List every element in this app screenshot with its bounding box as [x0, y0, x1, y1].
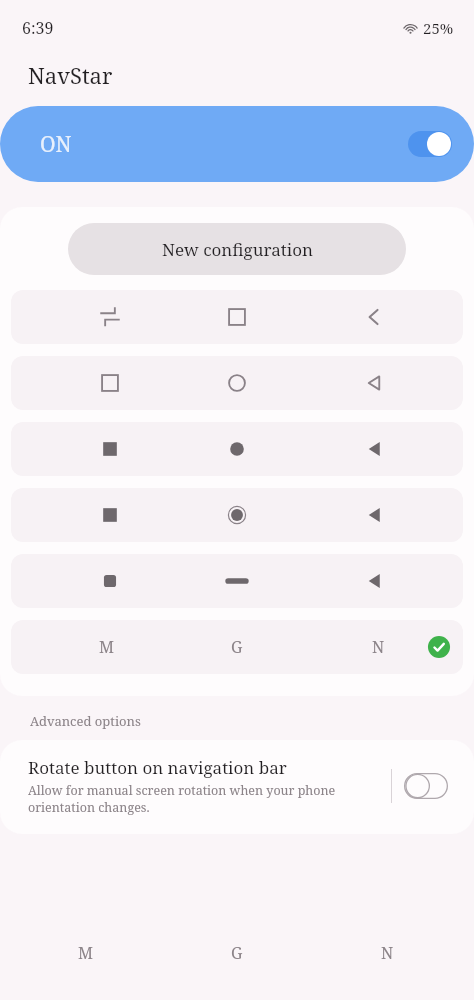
staticText: M [78, 942, 94, 964]
staticText: New configuration [162, 238, 313, 261]
button[interactable]: New configuration [68, 223, 406, 275]
staticText: 25% [423, 18, 454, 38]
button[interactable]: Switch [11, 290, 463, 344]
button[interactable]: Recents [11, 356, 463, 410]
other: Selected [427, 635, 451, 659]
other: Recents [99, 504, 121, 526]
other: Home [226, 504, 248, 526]
staticText: Rotate button on navigation bar [28, 756, 287, 779]
staticText: Advanced options [30, 712, 141, 730]
other: Back [363, 372, 385, 394]
staticText: N [372, 636, 385, 658]
other: Home [226, 438, 248, 460]
other: Switch [99, 306, 121, 328]
button[interactable]: Recents [11, 554, 463, 608]
staticText: M [99, 636, 115, 658]
button[interactable]: M [11, 914, 161, 992]
other: Back [363, 438, 385, 460]
staticText: ON [40, 130, 72, 159]
button[interactable]: G [161, 914, 312, 992]
other: Back [363, 306, 385, 328]
button[interactable]: Recents [11, 422, 463, 476]
other: Recents [99, 372, 121, 394]
button[interactable]: Rotate button toggle [404, 773, 448, 799]
other: Back [363, 504, 385, 526]
staticText: Allow for manual screen rotation when yo… [28, 782, 379, 816]
button[interactable]: N [312, 914, 463, 992]
other: Gesture bar [222, 570, 252, 592]
button[interactable]: ON [0, 106, 474, 182]
staticText: G [231, 636, 243, 658]
staticText: NavStar [28, 60, 113, 90]
other: Home [226, 372, 248, 394]
button[interactable]: M [11, 620, 463, 674]
other: Back [363, 570, 385, 592]
staticText: 6:39 [22, 17, 54, 39]
staticText: G [231, 942, 243, 964]
staticText: N [381, 942, 394, 964]
button[interactable]: Recents [11, 488, 463, 542]
other: Recents [226, 306, 248, 328]
button[interactable]: Rotate button on navigation bar [0, 740, 474, 834]
other: Recents [99, 570, 121, 592]
other: Recents [99, 438, 121, 460]
